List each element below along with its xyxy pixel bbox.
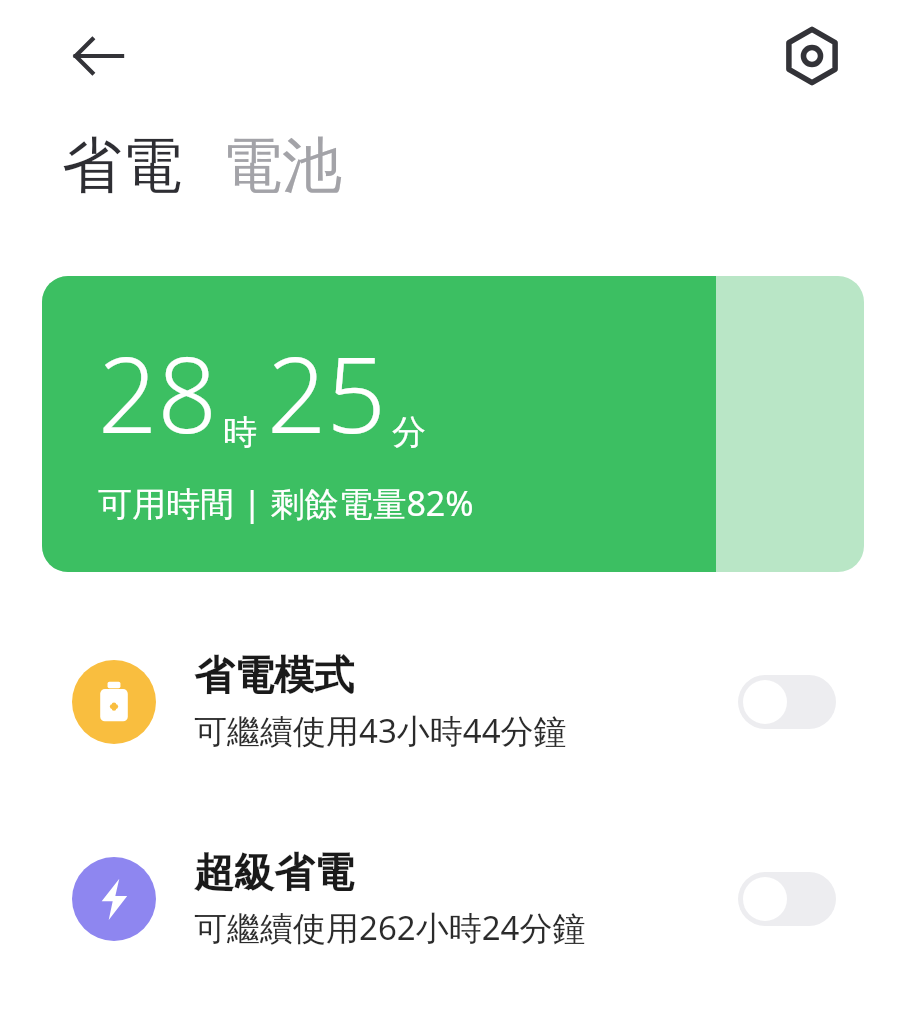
staticText: 省電模式 <box>194 650 354 700</box>
button[interactable]: 超級省電 <box>0 847 906 950</box>
button[interactable]: Back <box>52 10 144 102</box>
staticText: 可繼續使用262小時24分鐘 <box>194 905 586 950</box>
staticText: 可用時間 | 剩餘電量82% <box>98 480 474 526</box>
staticText: 25 <box>267 322 386 464</box>
staticText: 省電 <box>62 128 182 204</box>
button[interactable]: Settings <box>766 10 858 102</box>
button[interactable]: 超級省電 toggle <box>738 872 836 926</box>
button[interactable]: 28 <box>42 276 864 572</box>
button[interactable]: 省電模式 <box>0 650 906 753</box>
staticText: 28 <box>98 322 217 464</box>
button[interactable]: 省電模式 toggle <box>738 675 836 729</box>
staticText: 電池 <box>222 128 342 204</box>
staticText: 分 <box>392 411 426 454</box>
button[interactable]: 省電 <box>62 128 182 204</box>
staticText: 超級省電 <box>194 847 354 897</box>
staticText: 時 <box>223 411 257 454</box>
staticText: 可繼續使用43小時44分鐘 <box>194 708 567 753</box>
button[interactable]: 電池 <box>222 128 342 204</box>
